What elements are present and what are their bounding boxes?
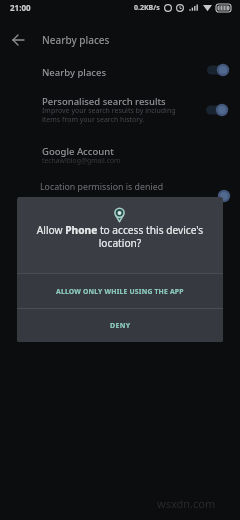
staticText: Nearby places <box>42 66 107 79</box>
staticText: 0.2KB/s <box>134 3 160 13</box>
button[interactable]: DENY <box>17 309 223 342</box>
button[interactable] <box>206 62 236 78</box>
staticText: DENY <box>110 321 131 331</box>
button[interactable]: Location permission is denied <box>0 177 240 199</box>
staticText: 21:00 <box>10 2 31 13</box>
staticText: wsxdn.com <box>157 496 216 511</box>
button[interactable] <box>6 30 32 50</box>
button[interactable]: Google Account <box>0 140 240 168</box>
staticText: Allow Phone to access this device's loca… <box>17 223 223 250</box>
button[interactable] <box>205 102 235 118</box>
staticText: Personalised search results <box>42 95 166 108</box>
staticText: Google Account <box>42 145 114 158</box>
staticText: techawlblog@gmail.com <box>42 156 121 165</box>
staticText: Improve your search results by including… <box>42 106 176 124</box>
button[interactable]: ALLOW ONLY WHILE USING THE APP <box>17 274 223 308</box>
button[interactable]: Personalised search results <box>0 91 240 127</box>
staticText: ALLOW ONLY WHILE USING THE APP <box>56 287 184 296</box>
button[interactable]: Nearby places <box>0 59 240 87</box>
staticText: Location permission is denied <box>40 181 164 193</box>
staticText: Nearby places <box>42 33 110 47</box>
